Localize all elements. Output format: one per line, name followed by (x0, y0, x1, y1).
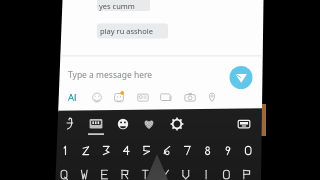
button[interactable]: 5 (142, 143, 162, 159)
button[interactable]: Text formatting (66, 91, 79, 104)
button[interactable]: 8 (203, 143, 223, 159)
button[interactable]: 6 (162, 143, 182, 159)
button[interactable]: 1 (61, 143, 81, 159)
staticText: play ru asshole (100, 26, 153, 36)
button[interactable]: Stickers (113, 91, 126, 104)
button[interactable]: Q (59, 166, 79, 180)
button[interactable]: T (140, 166, 160, 180)
button[interactable]: O (221, 166, 241, 180)
button[interactable]: Emoji keyboard (116, 117, 130, 131)
staticText: Type a message here (68, 69, 153, 81)
button[interactable]: Hide keyboard (237, 117, 251, 131)
button[interactable]: Type a message here (68, 69, 218, 87)
button[interactable]: R (120, 166, 140, 180)
button[interactable]: 9 (223, 143, 243, 159)
button[interactable]: W (79, 166, 99, 180)
button[interactable]: P (242, 166, 262, 180)
button[interactable]: Keyboard settings (170, 117, 184, 131)
button[interactable]: Gallery (160, 91, 173, 104)
button[interactable]: I (201, 166, 221, 180)
button[interactable]: Location (206, 91, 219, 104)
button[interactable]: Y (161, 166, 181, 180)
button[interactable]: 2 (81, 143, 101, 159)
button[interactable]: 0 (243, 143, 263, 159)
button[interactable]: 7 (182, 143, 202, 159)
button[interactable]: GIF (137, 91, 150, 104)
button[interactable]: 3 (101, 143, 121, 159)
button[interactable]: 4 (121, 143, 141, 159)
button[interactable]: Camera (184, 91, 197, 104)
button[interactable]: Themes (142, 117, 156, 131)
button[interactable]: Handwriting (63, 117, 77, 131)
button[interactable]: U (181, 166, 201, 180)
button[interactable]: Emoji (91, 91, 104, 104)
button[interactable]: Send message (229, 66, 253, 90)
button[interactable]: E (100, 166, 120, 180)
button[interactable]: ABC keyboard (89, 117, 103, 131)
staticText: yes cumm (99, 1, 135, 11)
